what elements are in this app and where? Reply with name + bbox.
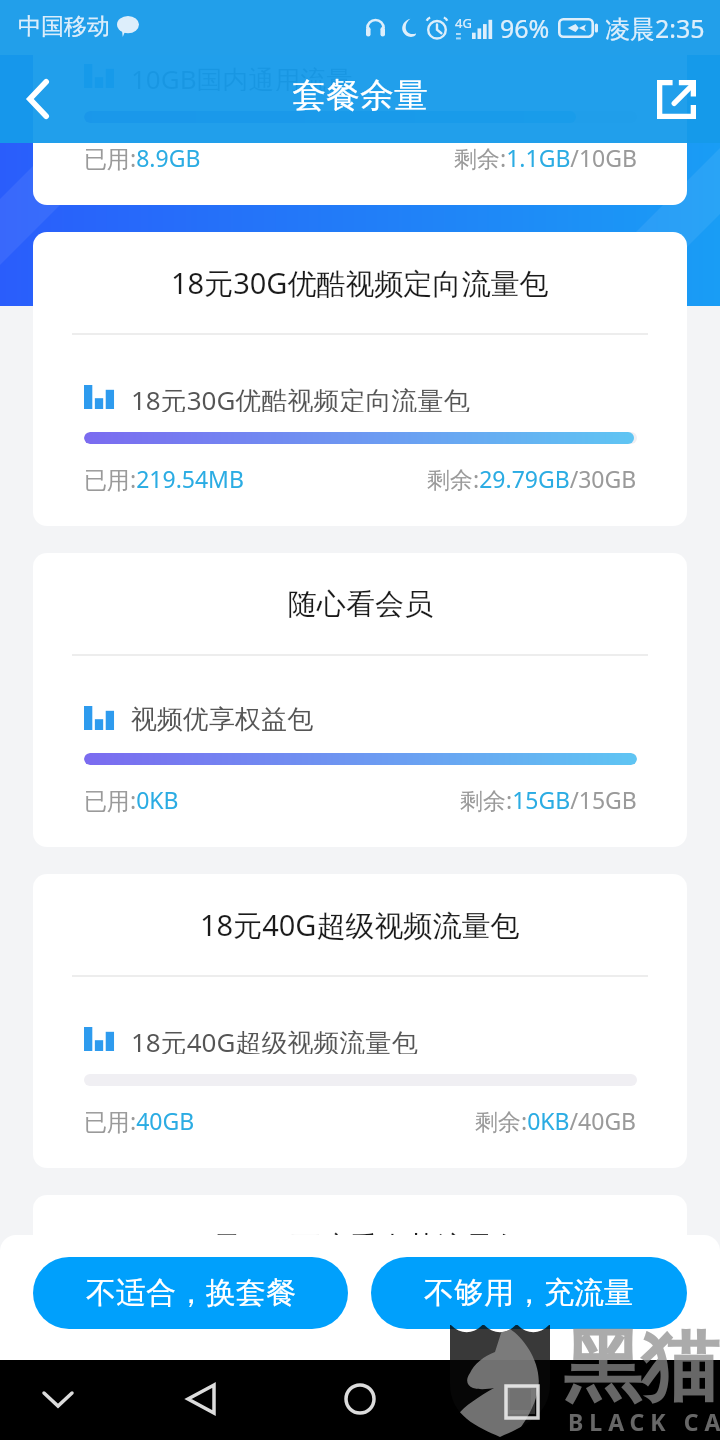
staticText: 已用:219.54MB (84, 463, 244, 494)
staticText: 不适合，换套餐 (86, 1274, 296, 1312)
staticText: 剩余:29.79GB/30GB (427, 463, 637, 494)
staticText: 18元30G优酷视频定向流量包 (171, 263, 549, 303)
staticText: 黑猫 (563, 1318, 719, 1416)
staticText: 6元150百度爱奇艺流量包 (196, 1226, 524, 1266)
staticText: 已用:8.9GB (84, 142, 201, 173)
staticText: 凌晨2:35 (605, 11, 705, 45)
button[interactable]: Back (0, 55, 76, 143)
staticText: 已用:40GB (84, 1105, 195, 1136)
button[interactable]: Share (632, 55, 720, 143)
staticText: 套餐余量 (292, 74, 428, 117)
staticText: 视频优享权益包 (131, 703, 313, 733)
button[interactable]: Recents (488, 1367, 552, 1431)
staticText: BLACK CAT (568, 1406, 720, 1437)
staticText: 4G (455, 14, 472, 32)
button[interactable]: 10GB国内通用流量包 (33, 0, 687, 205)
button[interactable]: Back (169, 1367, 233, 1431)
staticText: 剩余:150GB/150GB (433, 1426, 637, 1440)
staticText: 10GB国内通用流量 (131, 61, 353, 91)
staticText: 6元150百度爱奇艺流量包 (131, 1345, 425, 1375)
staticText: 18元40G超级视频流量包 (200, 905, 520, 945)
staticText: 中国移动 (18, 12, 110, 41)
staticText: 18元40G超级视频流量包 (131, 1024, 418, 1054)
staticText: 18元30G优酷视频定向流量包 (131, 382, 470, 412)
button[interactable]: 不够用，充流量 (371, 1257, 687, 1329)
button[interactable]: Hide keyboard (26, 1367, 90, 1431)
staticText: 剩余:1.1GB/10GB (454, 142, 637, 173)
staticText: 剩余:0KB/40GB (475, 1105, 637, 1136)
staticText: 剩余:15GB/15GB (460, 784, 637, 815)
button[interactable]: 18元30G优酷视频定向流量包 (33, 232, 687, 526)
button[interactable]: 不适合，换套餐 (33, 1257, 348, 1329)
button[interactable]: 随心看会员 (33, 553, 687, 847)
staticText: 随心看会员 (288, 586, 433, 623)
button[interactable]: Home (328, 1367, 392, 1431)
staticText: 已用:0KB (84, 784, 179, 815)
staticText: 96% (500, 11, 550, 45)
staticText: 不够用，充流量 (424, 1274, 634, 1312)
button[interactable]: 6元150百度爱奇艺流量包 (33, 1195, 687, 1440)
button[interactable]: 18元40G超级视频流量包 (33, 874, 687, 1168)
